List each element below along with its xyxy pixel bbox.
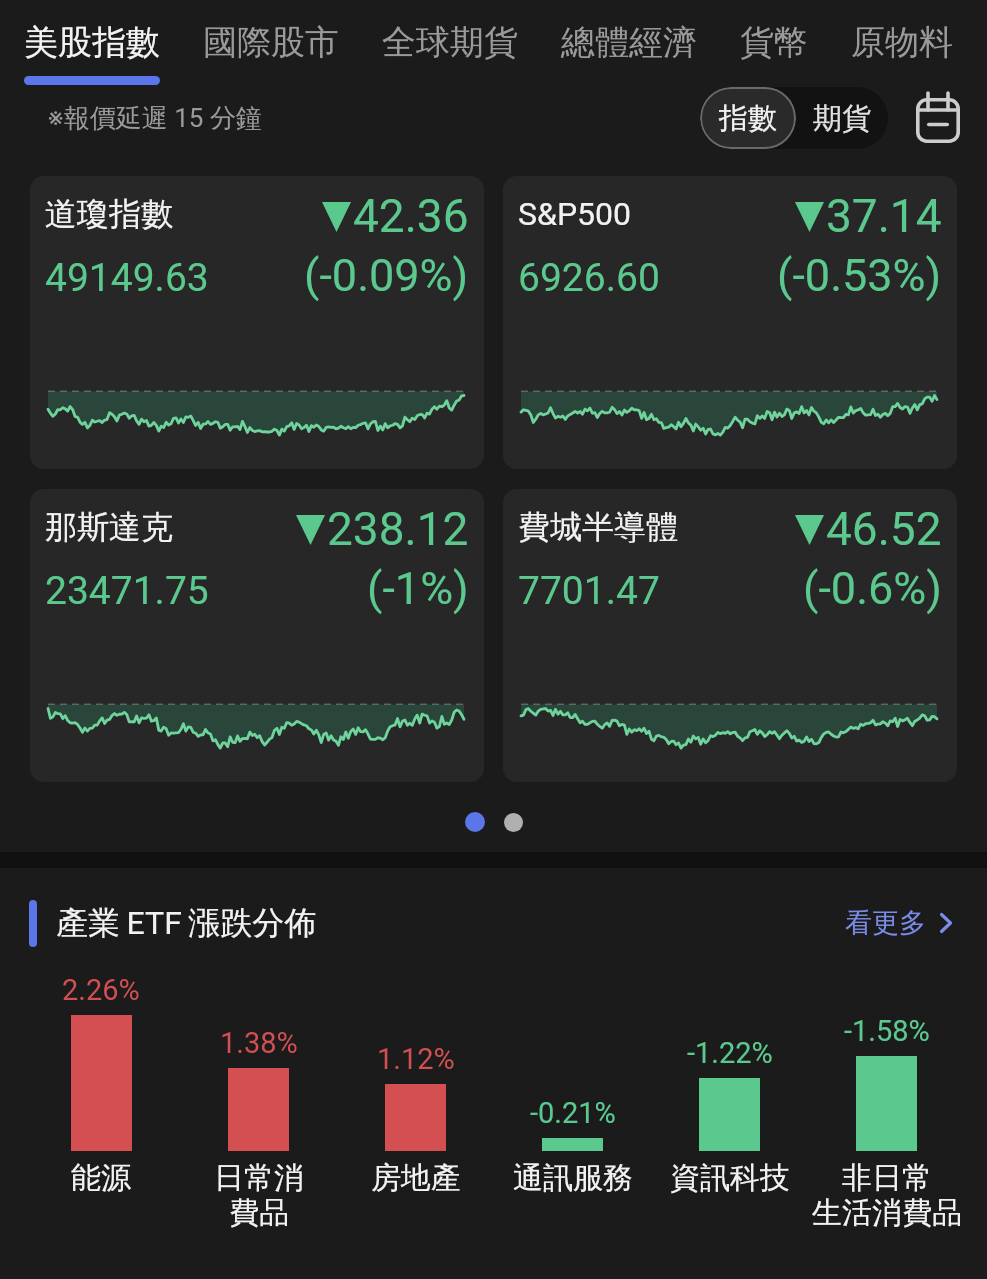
staticText: 總體經濟 xyxy=(561,21,697,64)
staticText: 費城半導體 xyxy=(518,507,678,547)
button[interactable]: 指數 xyxy=(700,87,796,149)
button[interactable]: 國際股市 xyxy=(203,0,339,76)
staticText: 6926.60 xyxy=(518,255,660,301)
button[interactable]: 那斯達克 xyxy=(30,489,484,782)
staticText: 7701.47 xyxy=(518,568,660,614)
staticText: 指數 xyxy=(719,100,777,137)
staticText: 美股指數 xyxy=(24,21,160,64)
staticText: 看更多 xyxy=(845,906,926,940)
staticText: S&P500 xyxy=(518,195,632,233)
staticText: 那斯達克 xyxy=(45,507,173,547)
staticText: 46.52 xyxy=(826,502,942,556)
staticText: 能源 xyxy=(71,1159,131,1197)
button[interactable]: 道瓊指數 xyxy=(30,176,484,469)
staticText: -1.22% xyxy=(687,1036,773,1070)
button[interactable]: 貨幣 xyxy=(740,0,808,76)
staticText: 全球期貨 xyxy=(382,21,518,64)
staticText: ※報價延遲 15 分鐘 xyxy=(48,102,262,135)
button[interactable]: 費城半導體 xyxy=(503,489,957,782)
staticText: 日常消 費品 xyxy=(214,1159,304,1232)
button[interactable]: 看更多 xyxy=(845,906,952,940)
staticText: 238.12 xyxy=(327,502,469,556)
staticText: 1.38% xyxy=(220,1026,298,1060)
staticText: 23471.75 xyxy=(45,568,209,614)
button[interactable]: 原物料 xyxy=(851,0,953,76)
staticText: (-0.6%) xyxy=(803,562,942,615)
staticText: 國際股市 xyxy=(203,21,339,64)
button[interactable]: 美股指數 xyxy=(24,0,160,85)
staticText: 42.36 xyxy=(353,189,469,243)
staticText: 2.26% xyxy=(62,973,140,1007)
button[interactable]: 總體經濟 xyxy=(561,0,697,76)
button[interactable]: 全球期貨 xyxy=(382,0,518,76)
staticText: 房地產 xyxy=(371,1159,461,1197)
staticText: 37.14 xyxy=(826,189,942,243)
staticText: (-0.09%) xyxy=(304,249,469,302)
staticText: 非日常 生活消費品 xyxy=(812,1159,962,1232)
button[interactable]: 期貨 xyxy=(796,87,888,149)
staticText: 產業 ETF 漲跌分佈 xyxy=(56,903,317,943)
staticText: 1.12% xyxy=(377,1042,455,1076)
staticText: -0.21% xyxy=(530,1096,616,1130)
staticText: 資訊科技 xyxy=(670,1159,790,1197)
staticText: 原物料 xyxy=(851,21,953,64)
staticText: -1.58% xyxy=(844,1014,930,1048)
staticText: (-0.53%) xyxy=(777,249,942,302)
button[interactable]: S&P500 xyxy=(503,176,957,469)
staticText: 通訊服務 xyxy=(513,1159,633,1197)
staticText: 期貨 xyxy=(813,100,871,137)
staticText: 貨幣 xyxy=(740,21,808,64)
button[interactable]: Calendar xyxy=(912,92,964,144)
staticText: 49149.63 xyxy=(45,255,209,301)
staticText: 道瓊指數 xyxy=(45,194,173,234)
staticText: (-1%) xyxy=(367,562,469,615)
